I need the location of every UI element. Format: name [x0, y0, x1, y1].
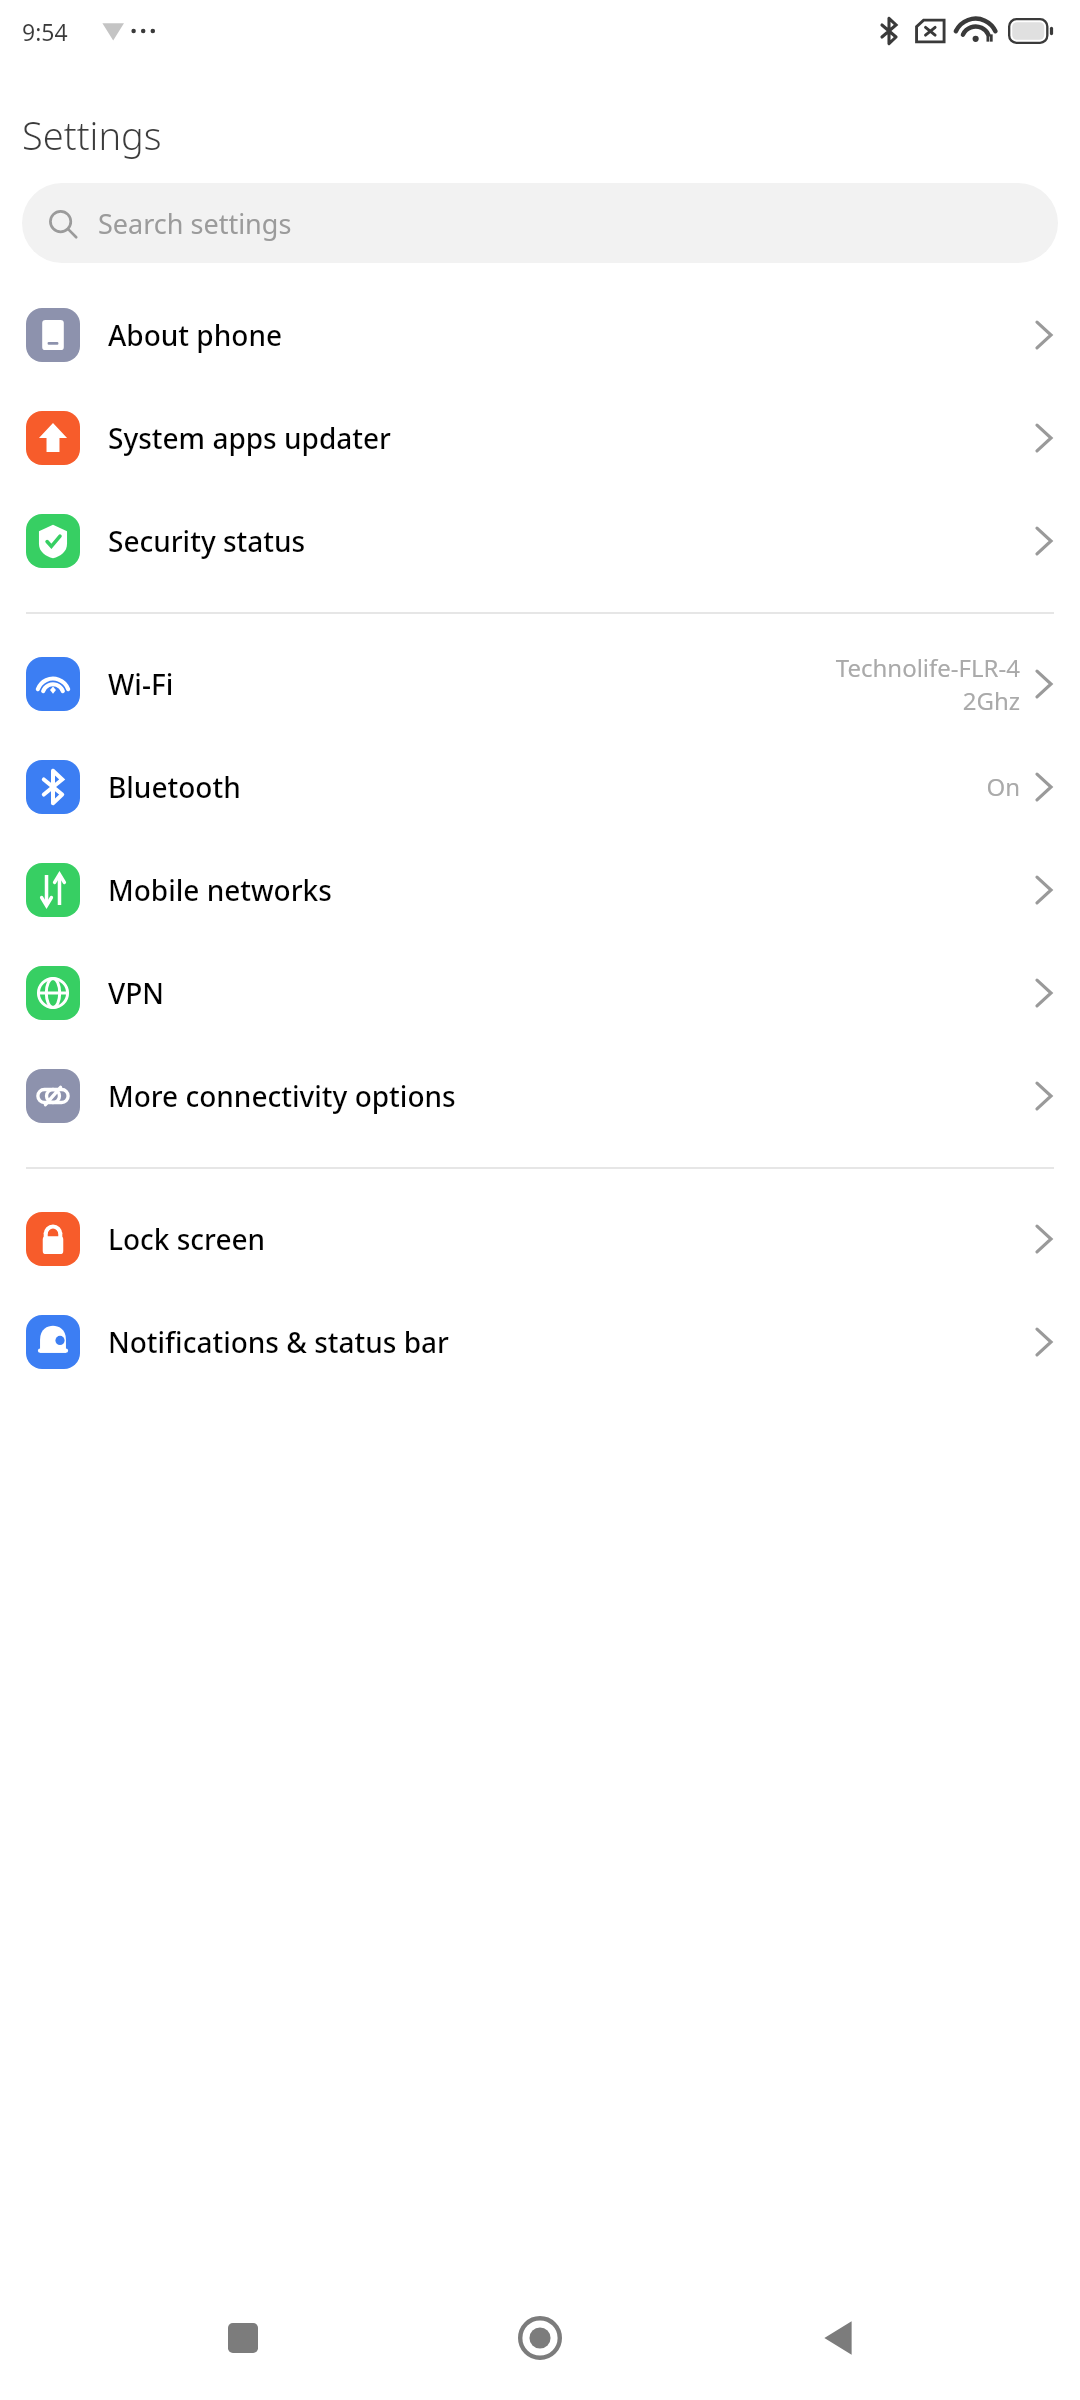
staticText: Lock screen [108, 1220, 1034, 1258]
button[interactable]: System apps updater [0, 386, 1080, 489]
staticText: Wi-Fi [108, 665, 835, 703]
button[interactable]: About phone [0, 283, 1080, 386]
button[interactable]: Home [485, 2283, 595, 2393]
staticText: Notifications & status bar [108, 1323, 1034, 1361]
button[interactable]: Lock screen [0, 1187, 1080, 1290]
staticText: More connectivity options [108, 1077, 1034, 1115]
staticText: Search settings [98, 205, 292, 242]
staticText: Technolife-FLR-4 2Ghz [835, 651, 1020, 717]
staticText: On [986, 770, 1020, 803]
staticText: 9:54 [22, 16, 68, 47]
button[interactable]: VPN [0, 941, 1080, 1044]
staticText: Mobile networks [108, 871, 1034, 909]
button[interactable]: Notifications & status bar [0, 1290, 1080, 1393]
button[interactable]: Security status [0, 489, 1080, 592]
staticText: Security status [108, 522, 1034, 560]
button[interactable]: More connectivity options [0, 1044, 1080, 1147]
staticText: About phone [108, 316, 1034, 354]
button[interactable]: Recent apps [188, 2283, 298, 2393]
staticText: Bluetooth [108, 768, 986, 806]
button[interactable]: Back [783, 2283, 893, 2393]
staticText: VPN [108, 974, 1034, 1012]
button[interactable]: Bluetooth [0, 735, 1080, 838]
button[interactable]: Search settings [22, 183, 1058, 263]
button[interactable]: Wi-Fi [0, 632, 1080, 735]
button[interactable]: Mobile networks [0, 838, 1080, 941]
staticText: System apps updater [108, 419, 1034, 457]
staticText: Settings [22, 109, 162, 161]
